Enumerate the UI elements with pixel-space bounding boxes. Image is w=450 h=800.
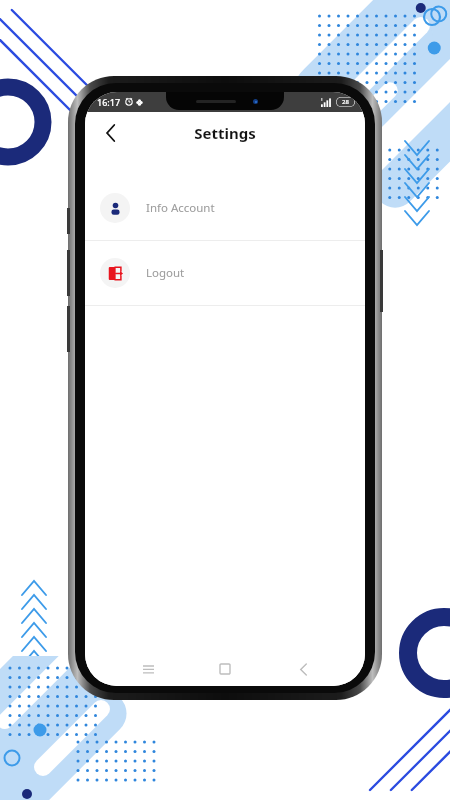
button[interactable]: Logout [85,241,365,305]
staticText: 28 [342,98,349,106]
button[interactable]: Recents [133,654,163,684]
staticText: Logout [146,265,185,281]
button[interactable]: Back [288,654,318,684]
staticText: 16:17 [97,96,121,108]
button[interactable]: Info Account [85,176,365,240]
button[interactable]: Back [93,116,127,150]
button[interactable]: Home [210,654,240,684]
staticText: Settings [194,123,256,143]
staticText: Info Account [146,200,215,216]
